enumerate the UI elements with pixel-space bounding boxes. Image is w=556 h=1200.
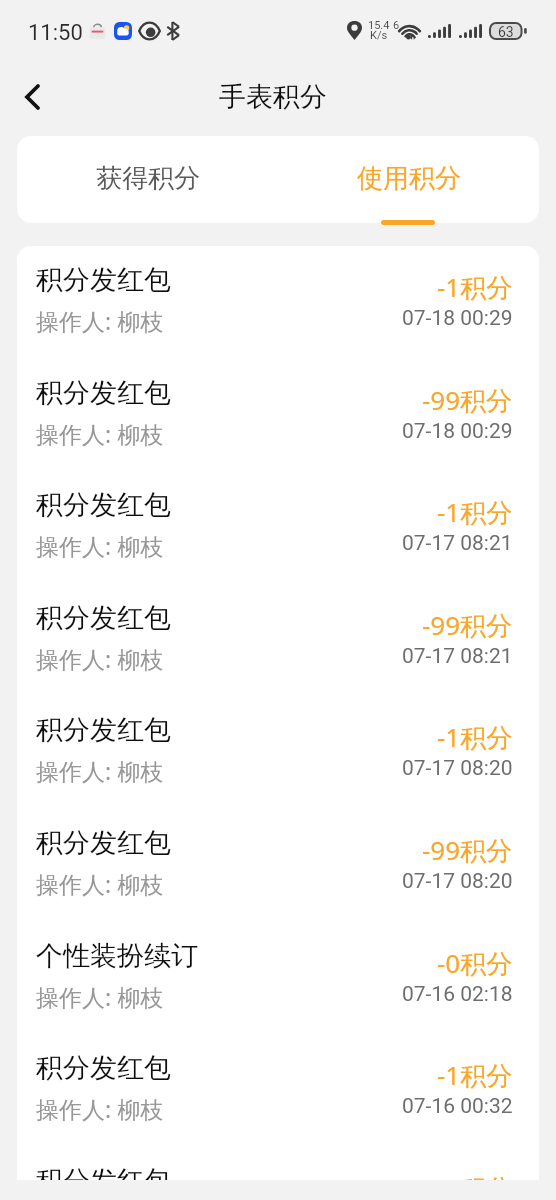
staticText: 积分发红包 xyxy=(36,1164,171,1180)
button[interactable]: 积分发红包 xyxy=(17,1034,539,1146)
staticText: 63 xyxy=(498,24,514,40)
staticText: 操作人: 柳枝 xyxy=(36,981,164,1012)
staticText: 15.4 xyxy=(368,19,390,32)
staticText: 操作人: 柳枝 xyxy=(36,418,164,449)
staticText: 操作人: 柳枝 xyxy=(36,643,164,674)
staticText: 07-16 00:32 xyxy=(402,1094,513,1119)
button[interactable]: 积分发红包 xyxy=(17,696,539,808)
button[interactable]: 积分发红包 xyxy=(17,584,539,696)
button[interactable]: 积分发红包 xyxy=(17,471,539,583)
button[interactable]: 个性装扮续订 xyxy=(17,922,539,1034)
staticText: 积分发红包 xyxy=(36,1051,171,1085)
staticText: -99积分 xyxy=(422,1170,513,1180)
staticText: 积分发红包 xyxy=(36,713,171,747)
button[interactable]: 积分发红包 xyxy=(17,1147,539,1180)
staticText: 积分发红包 xyxy=(36,488,171,522)
staticText: -99积分 xyxy=(422,382,513,418)
staticText: 操作人: 柳枝 xyxy=(36,755,164,786)
staticText: 积分发红包 xyxy=(36,376,171,410)
button[interactable]: 积分发红包 xyxy=(17,359,539,471)
staticText: 07-17 08:21 xyxy=(402,644,513,669)
staticText: 07-18 00:29 xyxy=(402,306,513,331)
staticText: -99积分 xyxy=(422,832,513,868)
staticText: -99积分 xyxy=(422,607,513,643)
staticText: 6 xyxy=(393,19,400,32)
button[interactable]: 积分发红包 xyxy=(17,809,539,921)
staticText: 07-17 08:20 xyxy=(402,869,513,894)
staticText: 操作人: 柳枝 xyxy=(36,1093,164,1124)
staticText: 07-16 02:18 xyxy=(402,982,513,1007)
button[interactable]: 获得积分 xyxy=(17,136,278,223)
staticText: -1积分 xyxy=(437,719,513,755)
button[interactable]: Back xyxy=(8,72,56,120)
staticText: 操作人: 柳枝 xyxy=(36,868,164,899)
staticText: 积分发红包 xyxy=(36,601,171,635)
staticText: 获得积分 xyxy=(96,162,200,195)
button[interactable]: 积分发红包 xyxy=(17,246,539,358)
staticText: 积分发红包 xyxy=(36,263,171,297)
staticText: 操作人: 柳枝 xyxy=(36,530,164,561)
staticText: 手表积分 xyxy=(219,80,327,114)
staticText: -0积分 xyxy=(437,945,513,981)
staticText: -1积分 xyxy=(437,494,513,530)
staticText: 操作人: 柳枝 xyxy=(36,305,164,336)
staticText: -1积分 xyxy=(437,269,513,305)
staticText: 个性装扮续订 xyxy=(36,939,198,973)
staticText: 11:50 xyxy=(28,20,83,46)
staticText: 07-17 08:20 xyxy=(402,756,513,781)
staticText: 07-18 00:29 xyxy=(402,419,513,444)
staticText: -1积分 xyxy=(437,1057,513,1093)
button[interactable]: 使用积分 xyxy=(278,136,539,223)
staticText: 使用积分 xyxy=(357,162,461,195)
staticText: 积分发红包 xyxy=(36,826,171,860)
staticText: K/s xyxy=(370,29,388,42)
staticText: 07-17 08:21 xyxy=(402,531,513,556)
